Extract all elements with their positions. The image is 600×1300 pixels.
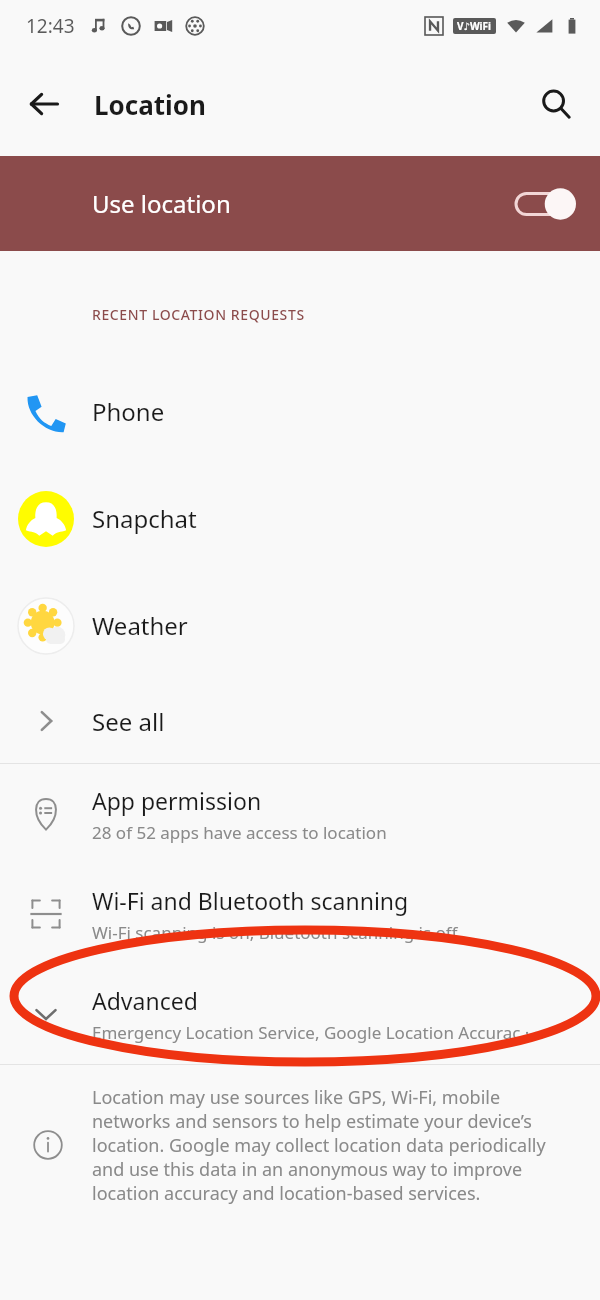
- staticText: Emergency Location Service, Google Locat…: [92, 1021, 539, 1044]
- staticText: Snapchat: [92, 502, 197, 535]
- staticText: App permission: [92, 785, 262, 816]
- staticText: Advanced: [92, 985, 198, 1016]
- button[interactable]: Weather: [0, 572, 600, 679]
- staticText: Wi-Fi scanning is on, Bluetooth scanning…: [92, 921, 458, 944]
- button[interactable]: App permission: [0, 764, 600, 864]
- staticText: Wi-Fi and Bluetooth scanning: [92, 885, 409, 916]
- button[interactable]: Phone: [0, 358, 600, 465]
- staticText: Location may use sources like GPS, Wi-Fi…: [92, 1085, 580, 1205]
- button[interactable]: Back: [16, 76, 72, 132]
- staticText: RECENT LOCATION REQUESTS: [92, 305, 305, 324]
- button[interactable]: Search: [528, 76, 584, 132]
- staticText: Use location: [92, 187, 514, 220]
- button[interactable]: Snapchat: [0, 465, 600, 572]
- staticText: See all: [92, 705, 165, 738]
- button[interactable]: Advanced: [0, 964, 600, 1064]
- staticText: V♪WiFi: [457, 19, 492, 33]
- staticText: 12:43: [26, 13, 75, 39]
- staticText: Weather: [92, 609, 188, 642]
- button[interactable]: Use location: [0, 156, 600, 251]
- staticText: Phone: [92, 395, 165, 428]
- staticText: 28 of 52 apps have access to location: [92, 821, 387, 844]
- staticText: Location: [94, 87, 206, 122]
- button[interactable]: Wi-Fi and Bluetooth scanning: [0, 864, 600, 964]
- button[interactable]: See all: [0, 679, 600, 763]
